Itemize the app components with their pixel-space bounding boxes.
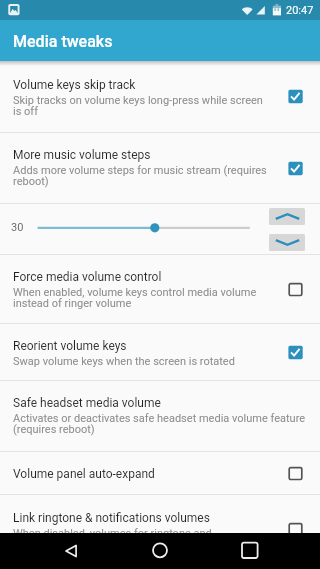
staticText: When disabled, volumes for ringtone and … <box>13 527 271 550</box>
button[interactable]: Safe headset media volume <box>0 381 320 451</box>
staticText: More music volume steps <box>13 148 151 162</box>
staticText: Adds more volume steps for music stream … <box>13 164 271 187</box>
staticText: Skip tracks on volume keys long-press wh… <box>13 94 271 117</box>
button[interactable]: Link ringtone & notifications volumes <box>0 495 320 533</box>
button[interactable]: Increase <box>269 208 305 225</box>
staticText: Media tweaks <box>13 32 113 51</box>
staticText: Activates or deactivates safe headset me… <box>13 412 313 435</box>
staticText: Link ringtone & notifications volumes <box>13 511 210 525</box>
staticText: 20:47 <box>286 4 314 17</box>
staticText: 30 <box>11 221 24 234</box>
button[interactable]: Recent apps <box>220 533 280 569</box>
staticText: Reorient volume keys <box>13 339 127 353</box>
staticText: Safe headset media volume <box>13 396 161 410</box>
button[interactable]: Force media volume control <box>0 255 320 323</box>
staticText: Volume keys skip track <box>13 78 136 92</box>
button[interactable]: More music volume steps <box>0 133 320 203</box>
button[interactable]: 30 <box>0 204 320 254</box>
staticText: Force media volume control <box>13 270 162 284</box>
staticText: When enabled, volume keys control media … <box>13 286 271 309</box>
button[interactable]: Home <box>130 533 190 569</box>
button[interactable]: Decrease <box>269 234 305 251</box>
staticText: Volume panel auto-expand <box>13 467 155 481</box>
button[interactable]: Volume keys skip track <box>0 61 320 132</box>
button[interactable]: Reorient volume keys <box>0 324 320 380</box>
button[interactable]: Back <box>40 533 100 569</box>
staticText: Swap volume keys when the screen is rota… <box>13 355 235 368</box>
button[interactable]: Volume panel auto-expand <box>0 452 320 494</box>
